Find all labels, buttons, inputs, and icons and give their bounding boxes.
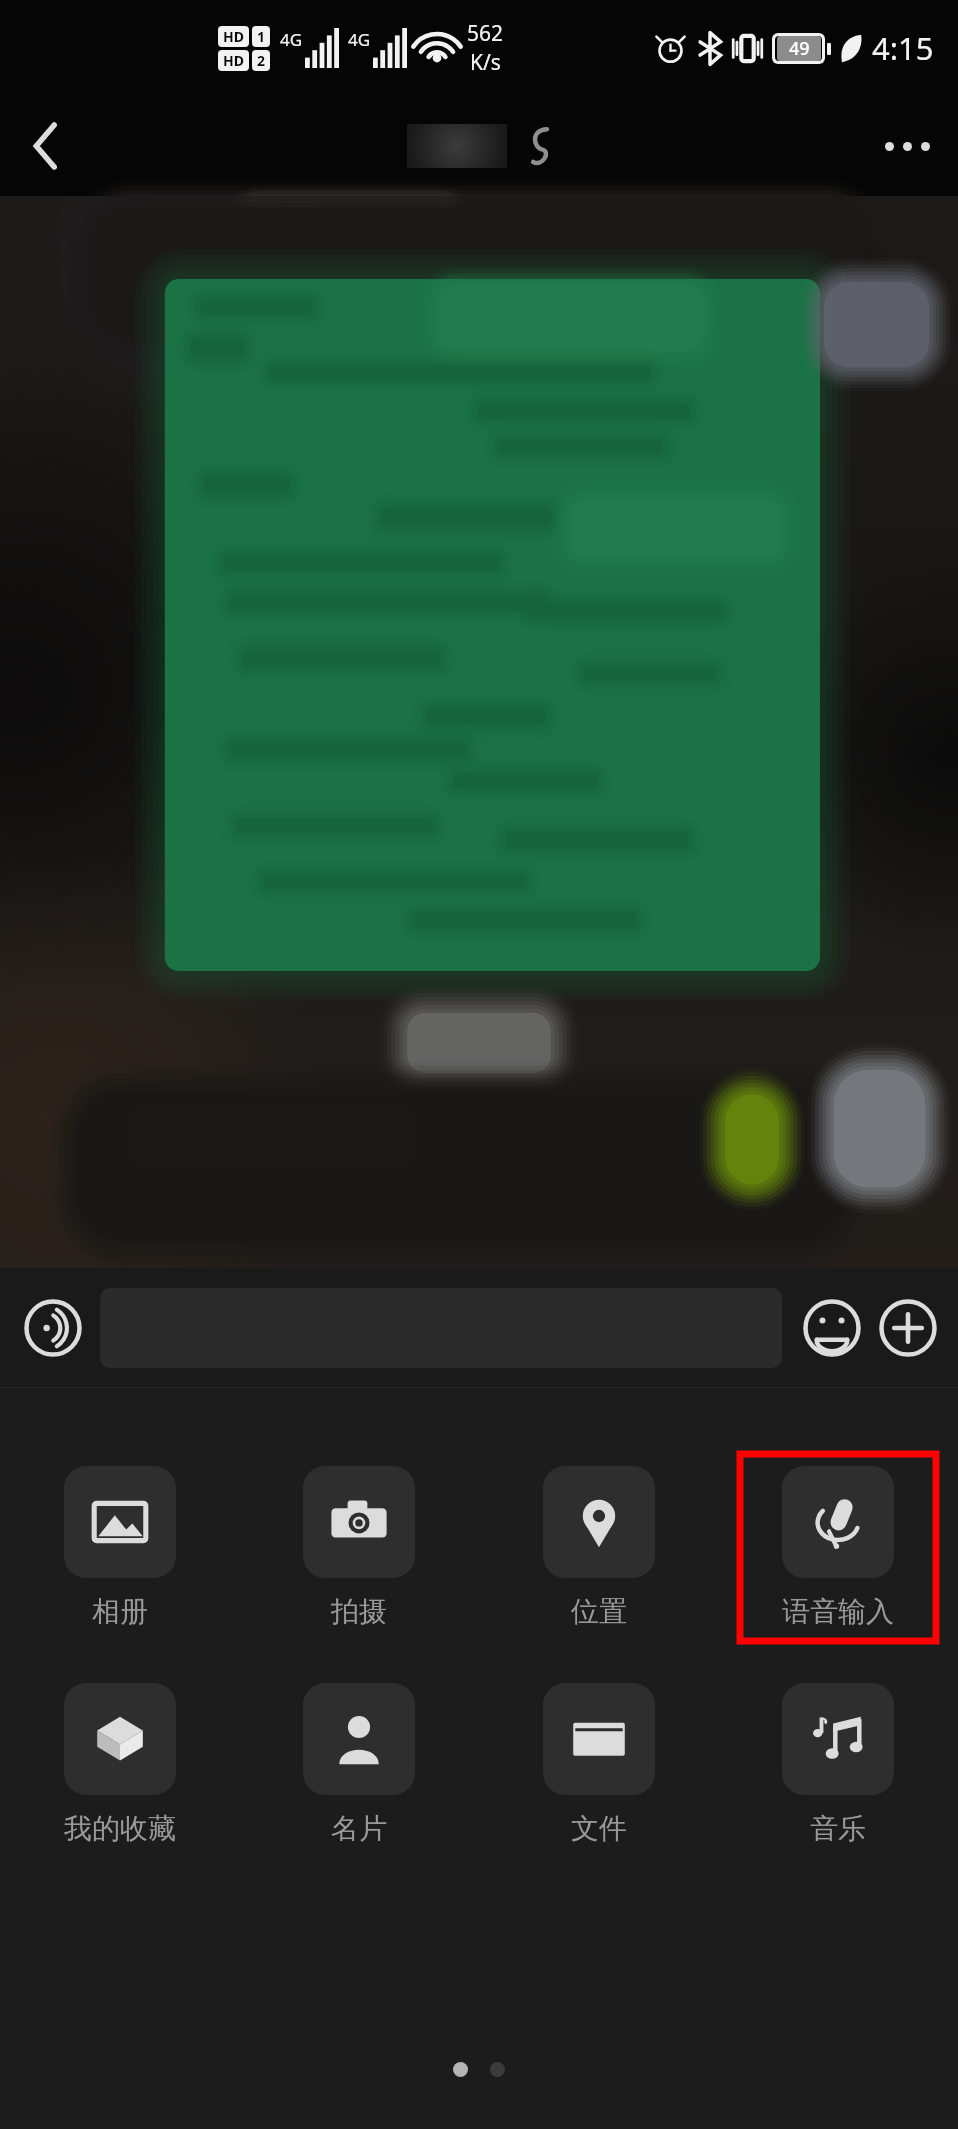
staticText: 名片: [331, 1811, 387, 1846]
staticText: 562: [467, 19, 504, 48]
staticText: HD: [223, 27, 244, 46]
button[interactable]: 音乐: [740, 1671, 936, 1858]
staticText: 1: [257, 27, 266, 46]
button[interactable]: 相册: [22, 1454, 218, 1641]
staticText: 49: [789, 36, 810, 61]
staticText: 文件: [571, 1811, 627, 1846]
staticText: 语音输入: [782, 1594, 894, 1629]
staticText: 位置: [571, 1594, 627, 1629]
staticText: 2: [257, 51, 266, 70]
staticText: HD: [223, 51, 244, 70]
button[interactable]: 语音输入: [740, 1454, 936, 1641]
staticText: 4G: [348, 28, 371, 51]
button[interactable]: 位置: [501, 1454, 697, 1641]
button[interactable]: Emoji: [796, 1292, 868, 1364]
button[interactable]: 名片: [261, 1671, 457, 1858]
button[interactable]: 我的收藏: [22, 1671, 218, 1858]
button[interactable]: More functions: [872, 1292, 944, 1364]
button[interactable]: 文件: [501, 1671, 697, 1858]
button[interactable]: 拍摄: [261, 1454, 457, 1641]
staticText: K/s: [470, 48, 501, 77]
staticText: 我的收藏: [64, 1811, 176, 1846]
button[interactable]: Back: [6, 107, 84, 185]
staticText: 4:15: [872, 27, 934, 69]
button[interactable]: More options: [868, 107, 946, 185]
button[interactable]: Voice message: [14, 1289, 92, 1367]
staticText: 相册: [92, 1594, 148, 1629]
staticText: 4G: [280, 28, 303, 51]
staticText: 拍摄: [331, 1594, 387, 1629]
staticText: 音乐: [810, 1811, 866, 1846]
